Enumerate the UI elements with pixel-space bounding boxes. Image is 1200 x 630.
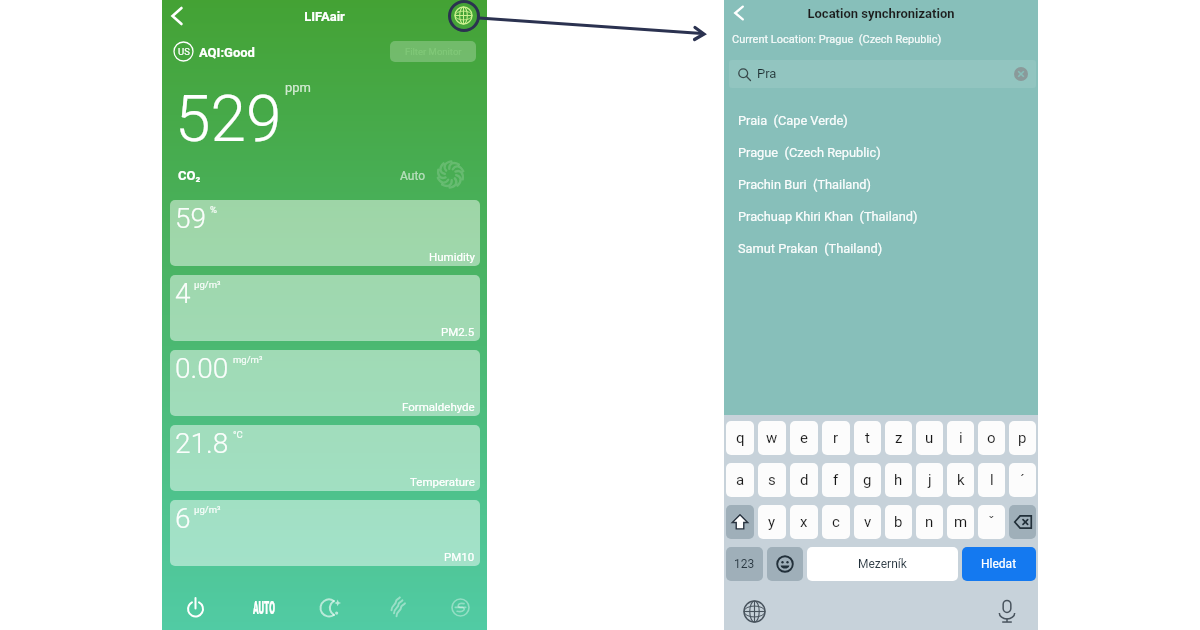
staticText: Prague (Czech Republic) [738, 145, 881, 160]
button[interactable]: n [916, 505, 943, 539]
button[interactable]: z [885, 421, 912, 455]
button[interactable]: Night mode [310, 587, 350, 627]
staticText: u [925, 429, 934, 447]
staticText: s [768, 471, 776, 489]
staticText: m [954, 513, 968, 531]
staticText: Auto [400, 169, 426, 183]
staticText: Prachin Buri (Thailand) [738, 177, 871, 192]
button[interactable]: d [790, 463, 818, 497]
button[interactable]: s [758, 463, 786, 497]
staticText: Location synchronization [724, 6, 1038, 21]
staticText: Temperature [410, 475, 475, 488]
staticText: p [1018, 429, 1027, 447]
button[interactable]: Prachin Buri (Thailand) [724, 168, 1038, 200]
staticText: o [987, 429, 996, 447]
staticText: Current Location: Prague (Czech Republic… [732, 33, 942, 46]
staticText: Filter Monitor [405, 46, 462, 57]
button[interactable]: e [790, 421, 818, 455]
button[interactable]: j [916, 463, 943, 497]
staticText: % [210, 204, 217, 215]
staticText: PM10 [444, 550, 475, 563]
button[interactable]: i [947, 421, 974, 455]
button[interactable]: o [978, 421, 1005, 455]
staticText: Praia (Cape Verde) [738, 113, 848, 128]
staticText: 529 [175, 82, 282, 157]
staticText: ´ [1020, 471, 1025, 489]
button[interactable]: u [916, 421, 943, 455]
staticText: ˇ [988, 513, 995, 531]
button[interactable]: 0.00 [170, 350, 480, 416]
button[interactable]: a [726, 463, 754, 497]
button[interactable]: 123 [726, 547, 763, 581]
button[interactable]: Pra [729, 60, 1036, 88]
staticText: n [925, 513, 934, 531]
button[interactable]: x [790, 505, 818, 539]
button[interactable]: 21.8 [170, 425, 480, 491]
button[interactable]: h [885, 463, 912, 497]
staticText: c [832, 513, 840, 531]
button[interactable]: Mezerník [807, 547, 958, 581]
button[interactable]: Prague (Czech Republic) [724, 136, 1038, 168]
button[interactable]: Backspace [1009, 505, 1036, 539]
staticText: US [178, 46, 190, 57]
button[interactable]: g [854, 463, 881, 497]
button[interactable]: c [822, 505, 850, 539]
staticText: µg/m³ [194, 504, 221, 515]
button[interactable]: 59 [170, 200, 480, 266]
button[interactable]: ˇ [978, 505, 1005, 539]
staticText: °C [233, 429, 243, 440]
staticText: 21.8 [175, 427, 229, 460]
button[interactable]: Language [454, 6, 473, 25]
staticText: PM2.5 [441, 325, 475, 338]
staticText: i [959, 429, 963, 447]
button[interactable]: 6 [170, 500, 480, 566]
button[interactable]: AUTO [234, 587, 294, 627]
button[interactable]: Power [175, 587, 215, 627]
staticText: q [736, 429, 745, 447]
button[interactable]: Emoji [767, 547, 803, 581]
staticText: 4 [175, 277, 191, 310]
button[interactable]: p [1009, 421, 1036, 455]
button[interactable]: Hledat [962, 547, 1036, 581]
staticText: a [736, 471, 745, 489]
button[interactable]: r [822, 421, 850, 455]
button[interactable]: y [758, 505, 786, 539]
button[interactable]: t [854, 421, 881, 455]
button[interactable]: Back [727, 1, 751, 25]
button[interactable]: 4 [170, 275, 480, 341]
button[interactable]: Shift [726, 505, 754, 539]
button[interactable]: ´ [1009, 463, 1036, 497]
staticText: b [894, 513, 903, 531]
staticText: v [864, 513, 872, 531]
staticText: h [894, 471, 903, 489]
staticText: e [800, 429, 808, 447]
staticText: 0.00 [175, 352, 229, 385]
staticText: r [833, 429, 839, 447]
button[interactable]: m [947, 505, 974, 539]
staticText: Hledat [981, 557, 1017, 571]
button[interactable]: Filter Monitor [390, 41, 476, 62]
button[interactable]: Samut Prakan (Thailand) [724, 232, 1038, 264]
button[interactable]: k [947, 463, 974, 497]
button[interactable]: Air flow [378, 587, 418, 627]
button[interactable]: Back [164, 3, 190, 29]
button[interactable]: l [978, 463, 1005, 497]
button[interactable]: f [822, 463, 850, 497]
staticText: Formaldehyde [402, 400, 475, 413]
button[interactable]: Praia (Cape Verde) [724, 104, 1038, 136]
staticText: µg/m³ [194, 279, 221, 290]
button[interactable]: v [854, 505, 881, 539]
staticText: CO₂ [178, 168, 201, 183]
button[interactable]: q [726, 421, 754, 455]
staticText: 123 [734, 557, 755, 571]
button[interactable]: w [758, 421, 786, 455]
staticText: Prachuap Khiri Khan (Thailand) [738, 209, 918, 224]
button[interactable]: Change language [743, 600, 766, 623]
button[interactable]: Prachuap Khiri Khan (Thailand) [724, 200, 1038, 232]
button[interactable]: Voice input [995, 599, 1019, 623]
button[interactable]: Clear [1014, 67, 1028, 81]
button[interactable]: b [885, 505, 912, 539]
button[interactable]: Mode [440, 587, 480, 627]
staticText: mg/m³ [233, 354, 263, 365]
staticText: l [990, 471, 994, 489]
